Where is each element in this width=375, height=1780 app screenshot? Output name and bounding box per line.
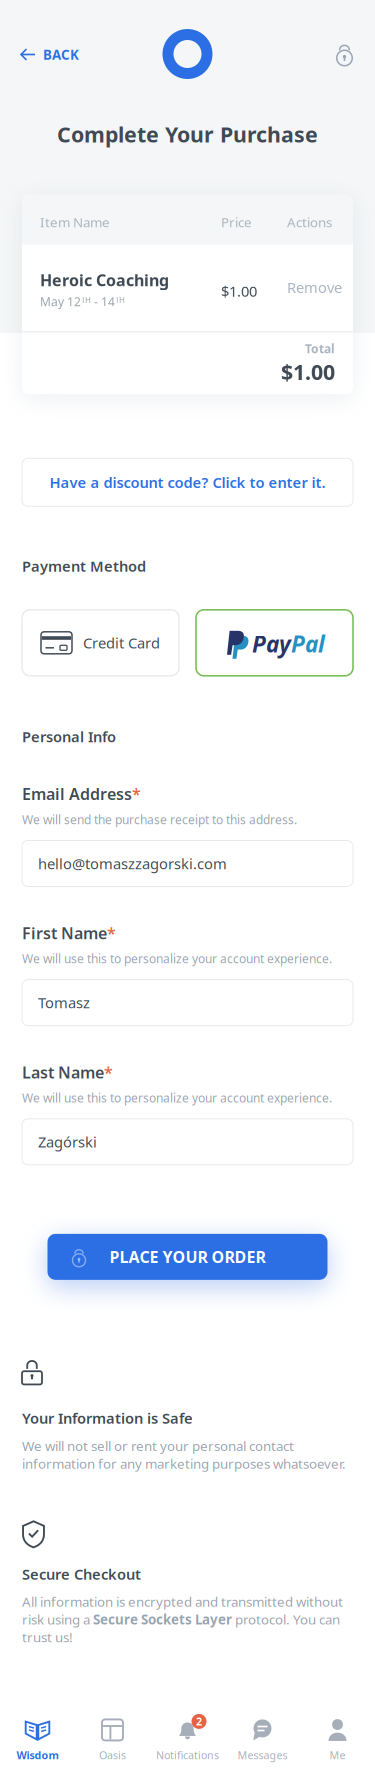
staticText: May 12TH - 14TH [40, 294, 125, 309]
staticText: Pay [252, 629, 291, 659]
staticText: Personal Info [22, 727, 116, 746]
staticText: Total [305, 341, 335, 357]
staticText: Heroic Coaching [40, 269, 169, 290]
button[interactable]: Me [300, 1718, 375, 1762]
staticText: Pal [291, 629, 325, 659]
staticText: Payment Method [22, 556, 146, 576]
button[interactable]: 2 [150, 1718, 225, 1762]
staticText: PLACE YOUR ORDER [109, 1246, 265, 1267]
staticText: Actions [287, 213, 332, 231]
button[interactable]: Credit Card [22, 610, 179, 676]
staticText: * [132, 783, 141, 804]
staticText: $1.00 [281, 358, 335, 386]
staticText: Wisdom [16, 1748, 58, 1762]
staticText: Price [221, 213, 252, 231]
staticText: We will use this to personalize your acc… [22, 1090, 332, 1106]
staticText: First Name [22, 922, 107, 944]
staticText: Tomasz [38, 993, 90, 1012]
button[interactable]: Have a discount code? Click to enter it. [22, 458, 353, 506]
button[interactable]: BACK [0, 0, 99, 109]
staticText: Remove [287, 278, 342, 297]
button[interactable]: Messages [225, 1718, 300, 1762]
staticText: We will send the purchase receipt to thi… [22, 811, 297, 827]
button[interactable]: Oasis [75, 1718, 150, 1762]
staticText: Email Address [22, 783, 132, 804]
button[interactable]: hello@tomaszzagorski.com [22, 840, 353, 886]
staticText: Notifications [156, 1748, 219, 1762]
button[interactable]: PLACE YOUR ORDER [47, 1234, 327, 1280]
staticText: $1.00 [221, 281, 257, 301]
staticText: hello@tomaszzagorski.com [38, 854, 227, 873]
button[interactable]: Secure connection [314, 0, 375, 109]
staticText: Me [329, 1748, 345, 1762]
staticText: * [104, 1062, 113, 1083]
staticText: BACK [43, 46, 79, 63]
staticText: Secure Checkout [22, 1564, 141, 1584]
staticText: We will use this to personalize your acc… [22, 951, 332, 967]
staticText: Credit Card [83, 633, 160, 653]
button[interactable]: Tomasz [22, 980, 353, 1026]
staticText: We will not sell or rent your personal c… [22, 1437, 346, 1472]
staticText: Have a discount code? Click to enter it. [49, 473, 325, 492]
button[interactable]: Wisdom [0, 1718, 75, 1762]
staticText: Item Name [40, 213, 110, 231]
staticText: * [107, 922, 116, 944]
staticText: Complete Your Purchase [57, 120, 318, 148]
button[interactable]: Zagórski [22, 1119, 353, 1165]
staticText: Your Information is Safe [22, 1408, 193, 1428]
staticText: Zagórski [38, 1132, 97, 1152]
button[interactable]: Remove [287, 272, 343, 302]
staticText: Last Name [22, 1062, 104, 1083]
button[interactable]: Pay [196, 610, 353, 676]
staticText: All information is encrypted and transmi… [22, 1593, 343, 1646]
staticText: Oasis [99, 1748, 126, 1762]
staticText: Messages [237, 1748, 287, 1762]
staticText: 2 [196, 1714, 202, 1728]
